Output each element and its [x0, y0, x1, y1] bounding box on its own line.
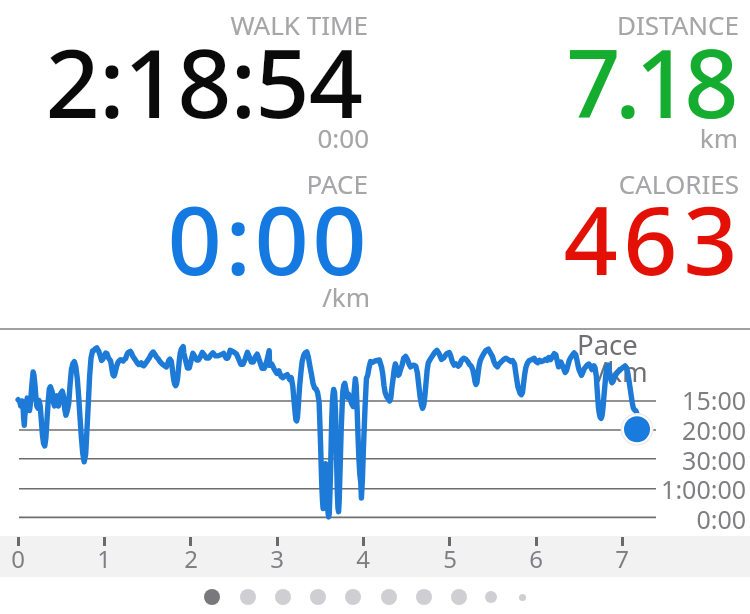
button[interactable]: Page 9 — [474, 580, 508, 614]
staticText: 30:00 — [146, 443, 746, 477]
staticText: 1:00:00 — [146, 472, 746, 506]
staticText: 0:00 — [0, 120, 369, 155]
staticText: WALK TIME — [0, 7, 368, 42]
staticText: PACE — [0, 166, 368, 201]
button[interactable]: Page 1 — [195, 580, 229, 614]
staticText: 20:00 — [146, 413, 746, 447]
button[interactable]: Page 2 — [231, 580, 265, 614]
staticText: CALORIES — [139, 166, 739, 201]
button[interactable]: Pace 0:00 per km — [0, 164, 375, 328]
staticText: 3 — [237, 542, 317, 575]
staticText: 0:00 — [146, 502, 746, 536]
staticText: /km — [0, 279, 370, 314]
staticText: /km — [597, 353, 648, 390]
staticText: 6 — [496, 542, 576, 575]
button[interactable]: Page 3 — [266, 580, 300, 614]
staticText: 0 — [0, 542, 58, 575]
staticText: 0:00 — [0, 173, 370, 302]
staticText: 7 — [582, 542, 662, 575]
button[interactable]: Page 6 — [372, 580, 406, 614]
button[interactable]: Page 10 — [505, 580, 539, 614]
staticText: 463 — [143, 173, 743, 302]
staticText: km — [138, 120, 738, 155]
button[interactable]: Distance 7.18 km — [375, 0, 750, 164]
button[interactable]: Page 7 — [407, 580, 441, 614]
button[interactable]: Page 8 — [442, 580, 476, 614]
staticText: 2 — [151, 542, 231, 575]
staticText: 5 — [410, 542, 490, 575]
button[interactable]: Walk time 2:18:54 — [0, 0, 375, 164]
staticText: Pace — [577, 326, 638, 363]
button[interactable]: Calories 463 — [375, 164, 750, 328]
button[interactable]: Page 5 — [336, 580, 370, 614]
staticText: 1 — [64, 542, 144, 575]
staticText: 15:00 — [146, 383, 746, 417]
staticText: 4 — [323, 542, 403, 575]
button[interactable]: Page 4 — [301, 580, 335, 614]
staticText: 7.18 — [133, 16, 733, 145]
staticText: DISTANCE — [139, 7, 739, 42]
staticText: 2:18:54 — [0, 16, 362, 145]
